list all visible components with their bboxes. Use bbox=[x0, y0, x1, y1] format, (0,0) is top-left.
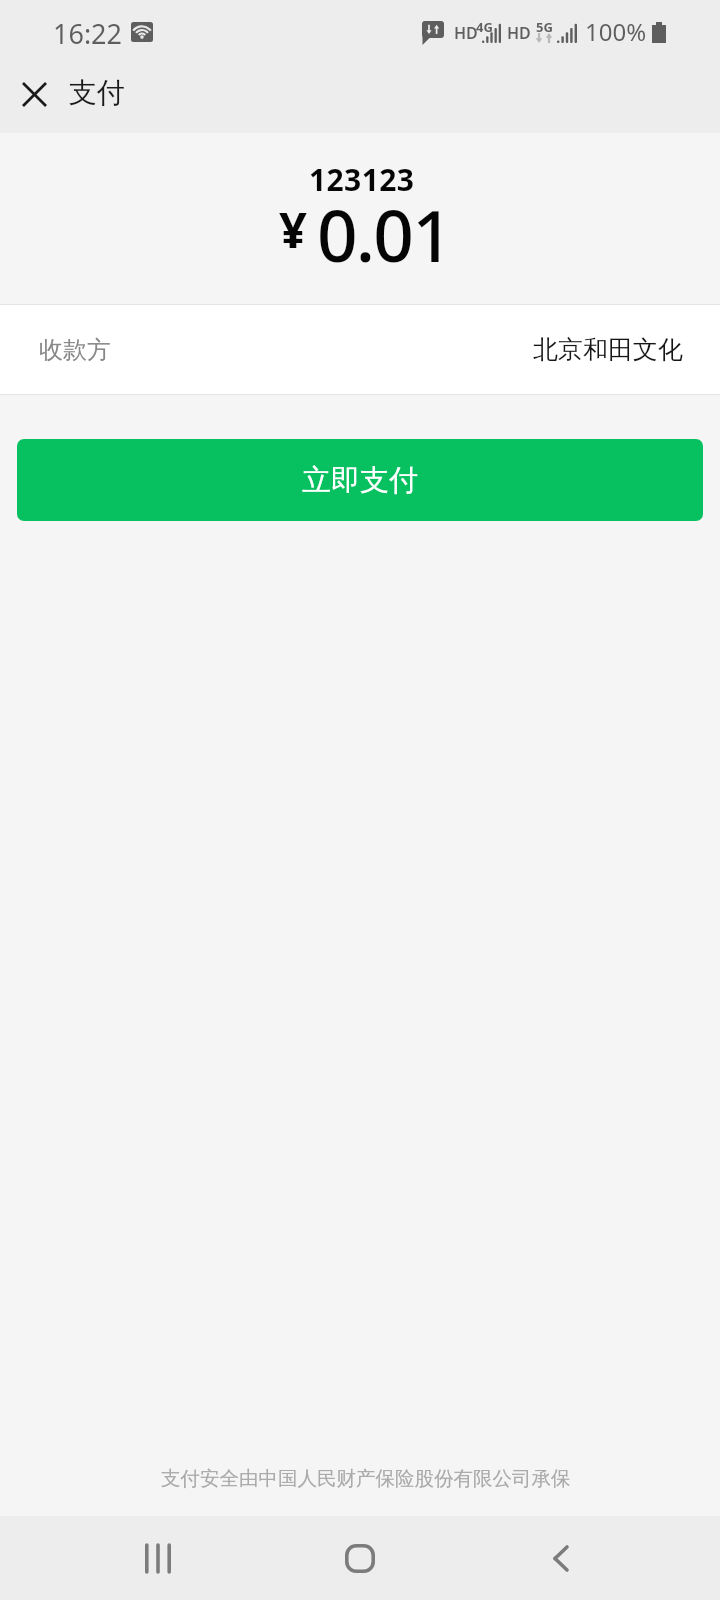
staticText: 支付安全由中国人民财产保险股份有限公司承保 bbox=[161, 1466, 571, 1491]
button[interactable]: Back bbox=[511, 1516, 611, 1600]
button[interactable]: Home bbox=[310, 1516, 410, 1600]
staticText: HD bbox=[454, 22, 478, 44]
staticText: 北京和田文化 bbox=[533, 334, 683, 365]
staticText: 收款方 bbox=[39, 335, 111, 365]
staticText: 立即支付 bbox=[302, 462, 418, 499]
button[interactable]: Recent apps bbox=[108, 1516, 208, 1600]
staticText: 支付 bbox=[69, 75, 125, 110]
staticText: 4G bbox=[476, 18, 493, 36]
button[interactable]: Close bbox=[5, 69, 64, 120]
button[interactable]: 收款方 bbox=[0, 305, 720, 394]
staticText: 100% bbox=[585, 15, 647, 48]
staticText: 0.01 bbox=[317, 186, 451, 283]
staticText: HD bbox=[507, 22, 531, 44]
button[interactable]: 立即支付 bbox=[17, 439, 703, 521]
staticText: 5G bbox=[536, 18, 553, 36]
staticText: ¥ bbox=[279, 196, 308, 263]
staticText: 123123 bbox=[309, 159, 415, 200]
staticText: 16:22 bbox=[53, 15, 123, 52]
